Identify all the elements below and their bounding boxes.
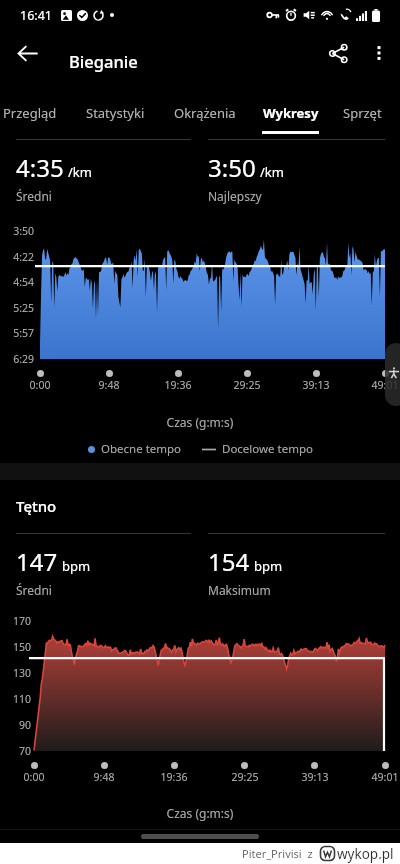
- button[interactable]: Wykresy: [263, 98, 319, 128]
- staticText: 130: [0, 666, 31, 680]
- button[interactable]: Przegląd: [3, 98, 57, 128]
- staticText: Przegląd: [3, 104, 57, 122]
- staticText: 3:50: [0, 224, 34, 238]
- button[interactable]: Edge panel: [385, 343, 400, 406]
- staticText: 9:48: [82, 770, 126, 784]
- staticText: bpm: [254, 557, 283, 575]
- button[interactable]: Sprzęt: [343, 98, 382, 128]
- staticText: 70: [0, 744, 31, 758]
- staticText: 0:00: [18, 378, 62, 392]
- staticText: Piter_Privisi z: [242, 846, 313, 861]
- staticText: 3:50: [208, 151, 256, 184]
- staticText: 49:01: [363, 378, 400, 392]
- staticText: Średni: [16, 582, 52, 598]
- staticText: Sprzęt: [343, 104, 382, 122]
- staticText: 4:22: [0, 250, 34, 264]
- button[interactable]: Back: [7, 33, 47, 73]
- staticText: 19:36: [152, 770, 196, 784]
- staticText: 29:25: [225, 378, 269, 392]
- staticText: 147: [16, 545, 58, 578]
- staticText: Wykresy: [263, 104, 319, 122]
- staticText: 4:54: [0, 275, 34, 289]
- button[interactable]: More options: [359, 33, 399, 73]
- staticText: Średni: [16, 188, 52, 204]
- staticText: Najlepszy: [208, 188, 262, 204]
- staticText: Czas (g:m:s): [0, 414, 400, 430]
- staticText: wykop.pl: [337, 845, 394, 863]
- staticText: 5:25: [0, 301, 34, 315]
- staticText: bpm: [62, 557, 91, 575]
- staticText: /km: [68, 163, 92, 181]
- staticText: 90: [0, 718, 31, 732]
- staticText: 5:57: [0, 326, 34, 340]
- staticText: /km: [260, 163, 284, 181]
- staticText: 150: [0, 640, 31, 654]
- staticText: Obecne tempo: [101, 441, 182, 457]
- staticText: 9:48: [87, 378, 131, 392]
- staticText: Bieganie: [69, 50, 138, 72]
- staticText: 39:13: [294, 378, 338, 392]
- button[interactable]: Statystyki: [86, 98, 145, 128]
- staticText: Maksimum: [208, 582, 271, 598]
- staticText: 16:41: [20, 7, 52, 24]
- staticText: Okrążenia: [174, 104, 236, 122]
- staticText: Statystyki: [86, 104, 145, 122]
- staticText: 6:29: [0, 352, 34, 366]
- button[interactable]: Share: [318, 33, 358, 73]
- staticText: 110: [0, 692, 31, 706]
- button[interactable]: Okrążenia: [174, 98, 236, 128]
- staticText: 154: [208, 545, 250, 578]
- staticText: 0:00: [12, 770, 56, 784]
- staticText: 39:13: [293, 770, 337, 784]
- staticText: 29:25: [223, 770, 267, 784]
- staticText: 49:01: [363, 770, 400, 784]
- staticText: 170: [0, 614, 31, 628]
- staticText: Tętno: [16, 496, 57, 516]
- staticText: 19:36: [156, 378, 200, 392]
- staticText: Czas (g:m:s): [0, 805, 400, 821]
- staticText: 4:35: [16, 151, 64, 184]
- staticText: Docelowe tempo: [222, 441, 313, 457]
